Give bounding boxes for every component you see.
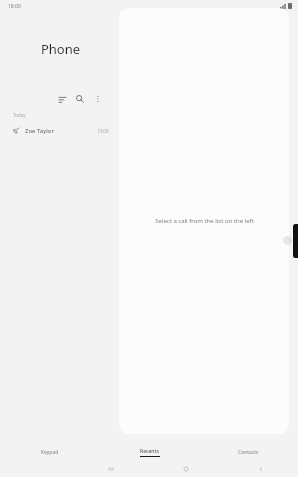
button[interactable]: More options [91, 92, 105, 106]
staticText: Today [13, 112, 26, 118]
staticText: Select a call from the list on the left [155, 217, 254, 225]
button[interactable]: Contacts [199, 444, 298, 460]
staticText: Recents [140, 448, 159, 455]
staticText: Phone [2, 40, 119, 58]
staticText: 18:00 [8, 3, 21, 10]
staticText: Zoe Taylor [25, 127, 54, 135]
button[interactable]: Keypad [0, 444, 100, 460]
button[interactable]: Home [148, 460, 223, 477]
staticText: 13:00 [97, 128, 109, 134]
button[interactable]: Recent apps [74, 460, 148, 477]
staticText: Keypad [41, 449, 59, 456]
button[interactable]: Edge panel handle [293, 224, 298, 258]
staticText: Contacts [238, 449, 259, 456]
button[interactable]: Sort [55, 92, 69, 106]
button[interactable]: Recents [100, 444, 199, 460]
button[interactable]: Zoe Taylor [0, 123, 119, 139]
button[interactable]: Search [73, 92, 87, 106]
